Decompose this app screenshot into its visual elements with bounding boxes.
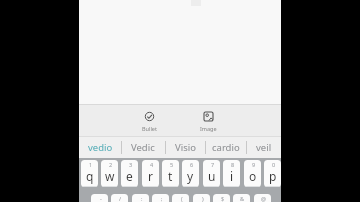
- button[interactable]: cardio: [205, 137, 247, 158]
- button[interactable]: 6: [182, 160, 199, 187]
- staticText: veil: [256, 141, 272, 154]
- button[interactable]: Vedic: [121, 137, 165, 158]
- staticText: Bullet: [142, 125, 157, 132]
- staticText: -: [100, 195, 102, 202]
- staticText: vedio: [88, 141, 113, 154]
- button[interactable]: 4: [142, 160, 159, 187]
- button[interactable]: 7: [203, 160, 220, 187]
- button[interactable]: 1: [81, 160, 98, 187]
- button[interactable]: ;: [152, 194, 169, 202]
- button[interactable]: 3: [121, 160, 138, 187]
- button[interactable]: Visio: [165, 137, 205, 158]
- staticText: 8: [231, 161, 235, 168]
- button[interactable]: vedio: [79, 137, 121, 158]
- staticText: ): [202, 195, 204, 202]
- staticText: 5: [170, 161, 174, 168]
- staticText: 4: [150, 161, 154, 168]
- staticText: 2: [109, 161, 113, 168]
- staticText: Image: [200, 125, 217, 132]
- button[interactable]: ): [193, 194, 210, 202]
- staticText: 0: [272, 161, 276, 168]
- button[interactable]: 2: [101, 160, 118, 187]
- staticText: e: [126, 168, 133, 184]
- staticText: u: [208, 168, 216, 184]
- staticText: @: [261, 195, 266, 202]
- staticText: 1: [89, 161, 93, 168]
- button[interactable]: 9: [244, 160, 261, 187]
- staticText: p: [269, 168, 277, 184]
- staticText: t: [168, 168, 173, 184]
- staticText: /: [119, 195, 122, 202]
- button[interactable]: veil: [246, 137, 281, 158]
- button[interactable]: @: [254, 194, 271, 202]
- staticText: cardio: [212, 141, 240, 154]
- button[interactable]: 8: [223, 160, 240, 187]
- staticText: &: [240, 195, 245, 202]
- staticText: q: [86, 168, 94, 184]
- button[interactable]: Image: [188, 108, 229, 132]
- staticText: Vedic: [131, 141, 155, 154]
- button[interactable]: 0: [264, 160, 281, 187]
- button[interactable]: -: [91, 194, 108, 202]
- staticText: (: [181, 195, 183, 202]
- staticText: ;: [161, 195, 163, 202]
- staticText: 3: [129, 161, 133, 168]
- button[interactable]: $: [213, 194, 230, 202]
- staticText: y: [187, 168, 194, 184]
- staticText: 7: [211, 161, 215, 168]
- button[interactable]: Bullet: [129, 108, 170, 132]
- staticText: i: [230, 168, 234, 184]
- staticText: o: [249, 168, 257, 184]
- button[interactable]: (: [172, 194, 189, 202]
- staticText: w: [105, 168, 115, 184]
- staticText: $: [221, 195, 225, 202]
- staticText: Visio: [175, 141, 196, 154]
- button[interactable]: &: [233, 194, 250, 202]
- button[interactable]: 5: [162, 160, 179, 187]
- staticText: r: [148, 168, 153, 184]
- button[interactable]: /: [111, 194, 128, 202]
- staticText: 9: [252, 161, 256, 168]
- staticText: 6: [190, 161, 194, 168]
- button[interactable]: :: [132, 194, 149, 202]
- staticText: :: [141, 195, 143, 202]
